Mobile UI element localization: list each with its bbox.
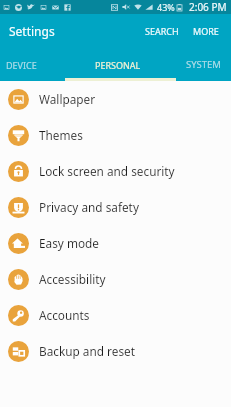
button[interactable]: Easy mode (0, 225, 231, 261)
staticText: Accessibility (39, 271, 106, 287)
staticText: SYSTEM (186, 58, 221, 71)
staticText: Backup and reset (39, 343, 135, 359)
button[interactable]: Lock screen and security (0, 153, 231, 189)
button[interactable]: MORE (189, 17, 231, 45)
button[interactable]: PERSONAL (62, 48, 173, 81)
button[interactable]: Accounts (0, 297, 231, 333)
staticText: PERSONAL (95, 59, 141, 71)
staticText: Wallpaper (39, 91, 96, 107)
button[interactable]: Wallpaper (0, 81, 231, 117)
staticText: 43% (157, 1, 175, 13)
staticText: 2:06 PM (189, 0, 227, 14)
button[interactable]: Accessibility (0, 261, 231, 297)
staticText: Accounts (39, 307, 90, 323)
button[interactable]: DEVICE (0, 48, 54, 81)
staticText: Themes (39, 127, 83, 143)
staticText: Privacy and safety (39, 199, 139, 215)
button[interactable]: SYSTEM (176, 48, 231, 81)
button[interactable]: Privacy and safety (0, 189, 231, 225)
staticText: DEVICE (6, 59, 37, 71)
staticText: SEARCH (145, 25, 179, 37)
staticText: Easy mode (39, 235, 99, 251)
button[interactable]: SEARCH (139, 17, 189, 45)
staticText: Lock screen and security (39, 163, 175, 179)
button[interactable]: Backup and reset (0, 333, 231, 369)
staticText: MORE (193, 25, 219, 37)
staticText: Settings (9, 23, 55, 39)
button[interactable]: Themes (0, 117, 231, 153)
